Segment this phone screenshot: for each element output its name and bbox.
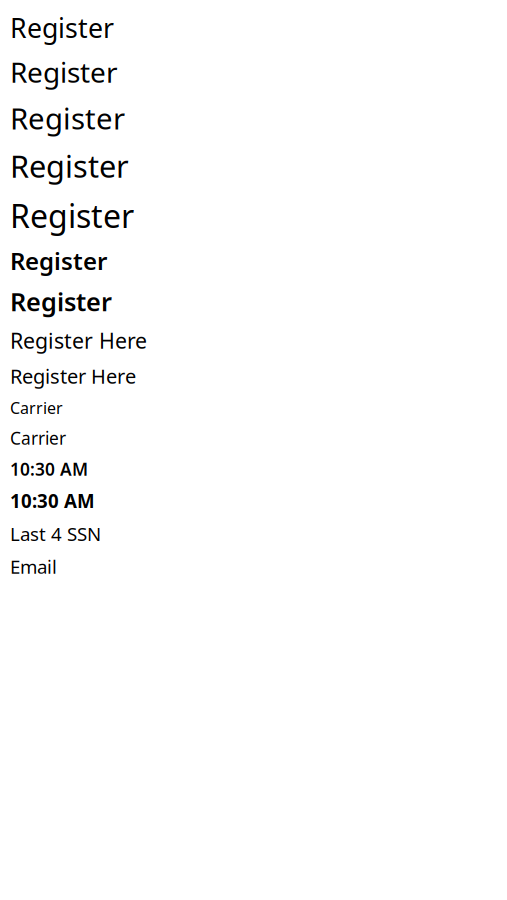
staticText: Last 4 SSN <box>10 521 101 546</box>
staticText: Register <box>10 53 118 91</box>
staticText: Register <box>10 245 107 277</box>
staticText: Register <box>10 10 114 45</box>
staticText: Register Here <box>10 363 136 389</box>
staticText: Register <box>10 145 129 186</box>
staticText: 10:30 AM <box>10 488 95 513</box>
staticText: Register Here <box>10 326 147 355</box>
staticText: Register <box>10 99 125 138</box>
staticText: Register <box>10 194 134 237</box>
staticText: Register <box>10 285 112 318</box>
staticText: Carrier <box>10 426 66 449</box>
staticText: 10:30 AM <box>10 457 88 480</box>
staticText: Email <box>10 554 57 579</box>
staticText: Carrier <box>10 397 63 418</box>
